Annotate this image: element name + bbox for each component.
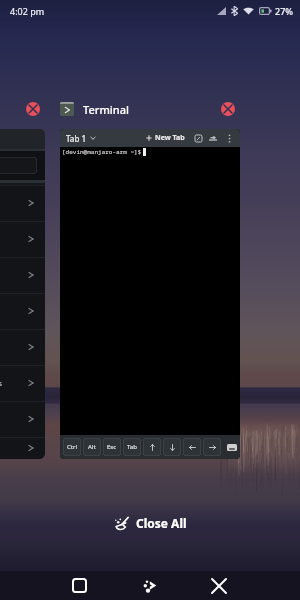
button[interactable]: Close app xyxy=(221,102,235,116)
button[interactable]: Alt xyxy=(83,438,101,456)
button[interactable]: Paste xyxy=(206,129,220,147)
button[interactable]: ys xyxy=(0,129,45,459)
staticText: [devin@manjaro-arm ~]$ xyxy=(62,148,142,156)
button[interactable]: Keyboard xyxy=(223,438,240,456)
staticText: Alt xyxy=(88,443,96,451)
button[interactable]: More options xyxy=(223,129,236,147)
button[interactable]: Tab 1 xyxy=(60,129,240,459)
staticText: Ctrl xyxy=(67,443,77,451)
button[interactable]: Close app xyxy=(26,102,40,116)
staticText: ys xyxy=(0,379,2,389)
staticText: New Tab xyxy=(155,133,185,143)
button[interactable]: Close All xyxy=(104,510,197,536)
button[interactable]: Select text xyxy=(191,129,205,147)
button[interactable]: Back xyxy=(127,571,171,600)
button[interactable]: Tab xyxy=(123,438,141,456)
button[interactable]: Esc xyxy=(103,438,121,456)
button[interactable]: Home xyxy=(57,571,101,600)
staticText: Tab 1 xyxy=(66,133,87,144)
button[interactable]: Right xyxy=(203,438,221,456)
button[interactable]: Down xyxy=(163,438,181,456)
button[interactable]: Up xyxy=(143,438,161,456)
staticText: Terminal xyxy=(83,102,129,116)
button[interactable]: Left xyxy=(183,438,201,456)
staticText: Tab xyxy=(127,443,137,451)
staticText: Close All xyxy=(136,515,187,531)
staticText: 27% xyxy=(275,5,293,17)
button[interactable]: Close xyxy=(197,571,241,600)
button[interactable]: Ctrl xyxy=(63,438,81,456)
staticText: 4:02 pm xyxy=(10,5,45,17)
staticText: Esc xyxy=(107,443,117,451)
